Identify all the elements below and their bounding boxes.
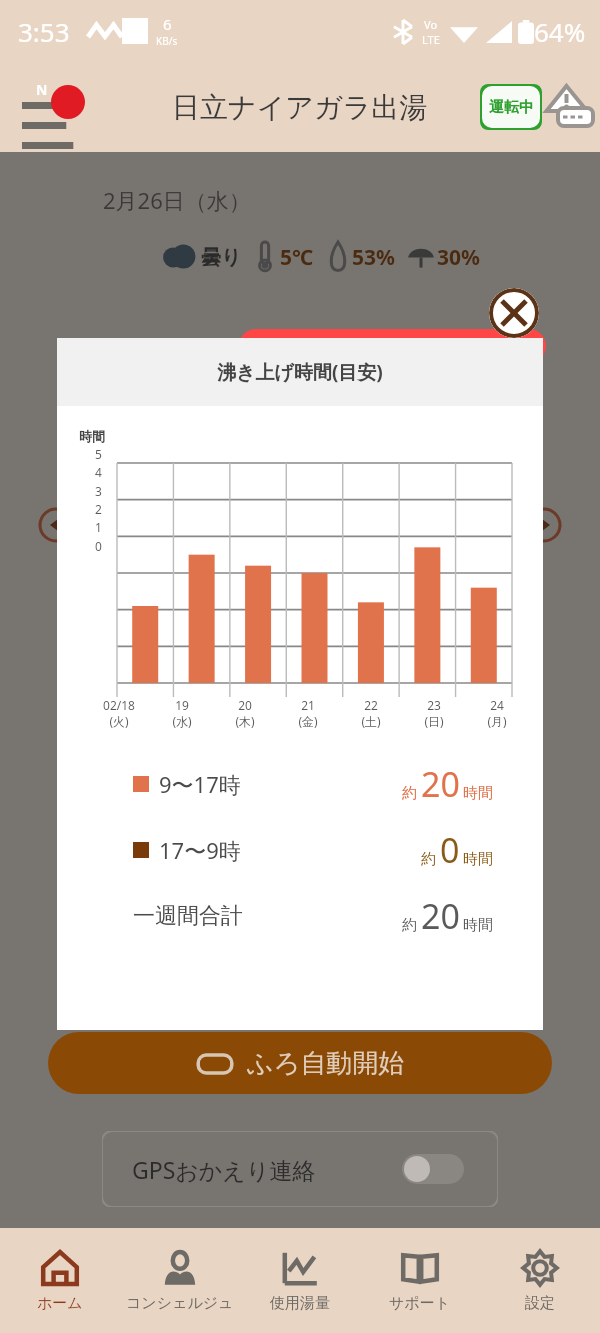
button[interactable]: 使用湯量 [240,1228,360,1333]
staticText: 20 [421,893,460,939]
button[interactable]: 一週間合計 [57,883,543,949]
staticText: 3:53 [18,14,70,49]
staticText: 日立ナイアガラ出湯 [172,90,428,125]
staticText: 64% [534,14,586,49]
staticText: 使用湯量 [270,1294,330,1313]
staticText: 曇り [201,245,242,270]
staticText: 2月26日（水） [103,185,251,215]
staticText: 5℃ [280,243,314,272]
staticText: 一週間合計 [133,902,243,930]
button[interactable]: 設定 [480,1228,600,1333]
staticText: 時間 [463,850,493,869]
staticText: コンシェルジュ [126,1294,234,1313]
staticText: 0 [95,538,102,554]
staticText: 30% [437,243,480,272]
staticText: 運転中 [489,98,534,117]
button[interactable]: お知らせ [544,82,594,132]
button[interactable]: ふろ自動開始 [48,1032,552,1094]
staticText: ふろ自動開始 [247,1047,405,1080]
staticText: 20 [238,697,252,713]
staticText: 6 [95,428,102,444]
staticText: LTE [422,32,440,47]
button[interactable]: GPSおかえり連絡 [102,1131,498,1207]
staticText: N [36,80,48,99]
staticText: 2 [95,501,102,517]
staticText: 1 [95,519,102,535]
button[interactable]: サポート [360,1228,480,1333]
staticText: 17〜9時 [159,835,241,865]
staticText: 約 [402,784,417,803]
staticText: 02/18 [103,697,135,713]
button[interactable]: 運転中 [480,84,542,130]
staticText: 時間 [79,428,105,444]
staticText: 22 [364,697,378,713]
button[interactable]: メニュー [14,76,76,138]
staticText: 約 [421,850,436,869]
staticText: 3 [95,483,102,499]
button[interactable]: コンシェルジュ [120,1228,240,1333]
button[interactable]: 前へ [38,507,74,543]
staticText: 5 [95,446,102,462]
button[interactable]: 閉じる [489,288,539,338]
staticText: (金) [298,713,318,729]
staticText: 23 [427,697,441,713]
staticText: 20 [421,761,460,807]
staticText: 設定 [525,1294,555,1313]
staticText: (日) [424,713,444,729]
staticText: 0 [440,827,460,873]
staticText: (月) [487,713,507,729]
staticText: (水) [172,713,192,729]
staticText: 時間 [463,916,493,935]
staticText: 9〜17時 [159,769,241,799]
staticText: 53% [352,243,395,272]
staticText: サポート [389,1294,451,1313]
staticText: KB/s [156,34,178,48]
staticText: (木) [235,713,255,729]
staticText: 19 [175,697,189,713]
staticText: 時間 [463,784,493,803]
staticText: 沸き上げ時間(目安) [217,359,383,385]
staticText: (土) [361,713,381,729]
staticText: (火) [109,713,129,729]
staticText: Vo [424,17,438,32]
staticText: 約 [402,916,417,935]
staticText: 6 [163,14,172,34]
staticText: 21 [301,697,315,713]
staticText: GPSおかえり連絡 [132,1154,316,1185]
button[interactable]: ホーム [0,1228,120,1333]
button[interactable]: 次へ [526,507,562,543]
staticText: ホーム [37,1294,83,1313]
button[interactable]: 17〜9時 [57,817,543,883]
button[interactable]: 9〜17時 [57,751,543,817]
staticText: 24 [490,697,504,713]
staticText: 4 [95,464,102,480]
